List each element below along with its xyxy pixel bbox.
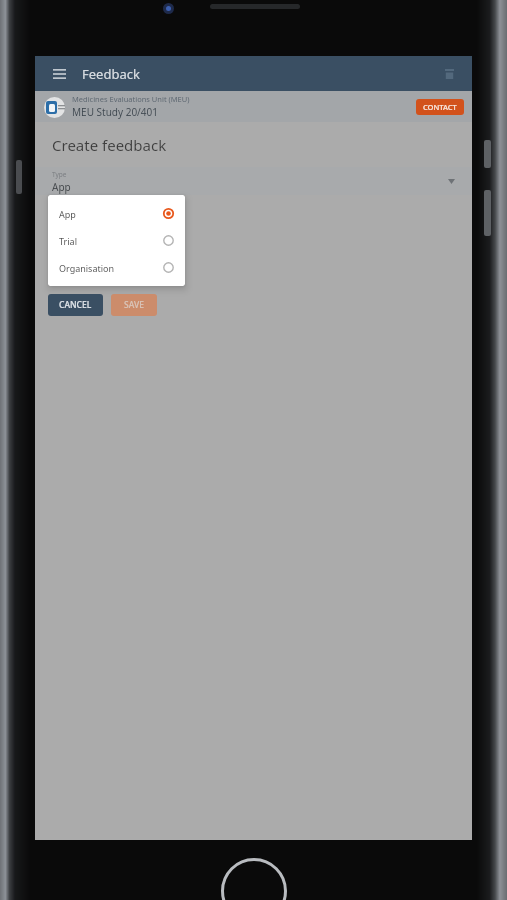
staticText: CANCEL [59,299,92,311]
staticText: App [52,180,71,194]
staticText: Medicines Evaluations Unit (MEU) [72,94,190,104]
button[interactable]: More options [437,62,461,86]
button[interactable]: App [48,200,185,227]
staticText: Feedback [82,65,140,83]
staticText: Trial [59,235,77,247]
button[interactable]: CONTACT [416,99,464,115]
button[interactable]: Trial [48,227,185,254]
staticText: CONTACT [423,102,457,112]
button[interactable]: SAVE [111,294,157,316]
staticText: MEU Study 20/401 [72,105,158,119]
button[interactable]: Organisation [48,254,185,281]
staticText: Type [52,170,67,179]
staticText: SAVE [124,299,144,311]
button[interactable]: Menu [46,61,72,87]
button[interactable]: Type [35,167,472,195]
staticText: Create feedback [52,135,167,155]
button[interactable]: CANCEL [48,294,103,316]
staticText: App [59,208,76,220]
staticText: Organisation [59,262,115,274]
